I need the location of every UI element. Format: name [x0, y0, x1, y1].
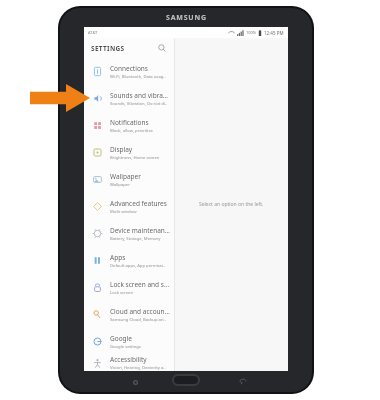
staticText: Wi-Fi, Bluetooth, Data usag..: [110, 74, 166, 80]
staticText: Device maintenance: [110, 226, 170, 235]
button[interactable]: Display: [84, 139, 174, 166]
staticText: Google settings: [110, 344, 141, 350]
button[interactable]: Notifications: [84, 112, 174, 139]
staticText: Samsung Cloud, Backup an..: [110, 317, 166, 323]
staticText: Select an option on the left.: [199, 201, 264, 208]
staticText: Wallpaper: [110, 172, 141, 181]
staticText: Lock screen: [110, 290, 134, 296]
staticText: Wallpaper: [110, 182, 130, 188]
button[interactable]: Google: [84, 328, 174, 355]
button[interactable]: Advanced features: [84, 193, 174, 220]
button[interactable]: Apps: [84, 247, 174, 274]
staticText: Sounds and vibrati...: [110, 91, 170, 100]
staticText: SETTINGS: [91, 44, 125, 53]
staticText: SAMSUNG: [166, 13, 207, 23]
staticText: Battery, Storage, Memory: [110, 236, 161, 242]
button[interactable]: Recents: [129, 376, 141, 388]
staticText: Accessibility: [110, 355, 147, 364]
button[interactable]: Back: [237, 376, 249, 388]
button[interactable]: Home: [172, 374, 200, 386]
staticText: Lock screen and se...: [110, 280, 170, 289]
staticText: Cloud and accounts: [110, 307, 170, 316]
button[interactable]: Wallpaper: [84, 166, 174, 193]
button[interactable]: Device maintenance: [84, 220, 174, 247]
staticText: Sounds, Vibration, Do not di..: [110, 101, 168, 107]
button[interactable]: Connections: [84, 58, 174, 85]
staticText: Notifications: [110, 118, 149, 127]
staticText: Connections: [110, 64, 148, 73]
staticText: 100%: [246, 30, 257, 35]
staticText: Multi window: [110, 209, 137, 215]
staticText: Brightness, Home screen: [110, 155, 160, 161]
staticText: 12:45 PM: [264, 30, 284, 36]
button[interactable]: Lock screen and se...: [84, 274, 174, 301]
staticText: Default apps, App permissi..: [110, 263, 166, 269]
button[interactable]: Search: [156, 42, 168, 54]
staticText: Apps: [110, 253, 126, 262]
staticText: Display: [110, 145, 133, 154]
button[interactable]: Sounds and vibrati...: [84, 85, 174, 112]
staticText: Advanced features: [110, 199, 167, 208]
staticText: AT&T: [88, 30, 98, 35]
staticText: Vision, Hearing, Dexterity a..: [110, 365, 166, 371]
staticText: Google: [110, 334, 132, 343]
staticText: Block, allow, prioritize: [110, 128, 153, 134]
button[interactable]: Accessibility: [84, 355, 174, 371]
button[interactable]: Cloud and accounts: [84, 301, 174, 328]
